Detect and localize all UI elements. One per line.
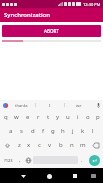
button[interactable]: u: [63, 110, 73, 124]
button[interactable]: Back: [17, 170, 29, 182]
staticText: t: [47, 113, 50, 121]
staticText: n: [70, 141, 74, 149]
staticText: h: [61, 127, 65, 135]
staticText: r: [37, 113, 40, 121]
button[interactable]: ABORT: [2, 25, 101, 37]
staticText: m: [80, 141, 86, 149]
button[interactable]: Home: [43, 170, 55, 182]
button[interactable]: s: [16, 124, 27, 138]
button[interactable]: I: [36, 100, 64, 110]
button[interactable]: k: [78, 124, 88, 138]
button[interactable]: g: [48, 124, 58, 138]
button[interactable]: m: [77, 138, 88, 152]
staticText: v: [48, 141, 52, 149]
button[interactable]: o: [83, 110, 93, 124]
staticText: I: [49, 103, 51, 108]
button[interactable]: .: [78, 152, 86, 168]
button[interactable]: i: [73, 110, 83, 124]
button[interactable]: we: [65, 100, 93, 110]
staticText: y: [56, 113, 60, 121]
button[interactable]: Backspace: [88, 138, 103, 152]
button[interactable]: z: [14, 138, 24, 152]
staticText: u: [66, 113, 70, 121]
button[interactable]: Enter: [89, 155, 100, 166]
staticText: q: [4, 113, 8, 121]
button[interactable]: e: [22, 110, 33, 124]
staticText: o: [86, 113, 90, 121]
staticText: b: [59, 141, 63, 149]
staticText: i: [77, 113, 79, 121]
staticText: j: [72, 127, 74, 135]
button[interactable]: Google: [3, 103, 8, 108]
staticText: ABORT: [44, 28, 59, 34]
button[interactable]: Switch keyboard: [87, 170, 99, 182]
button[interactable]: Recents: [69, 170, 81, 182]
staticText: 12:30 PM: [83, 2, 101, 7]
button[interactable]: a: [5, 124, 16, 138]
button[interactable]: c: [34, 138, 44, 152]
button[interactable]: j: [68, 124, 78, 138]
staticText: x: [27, 141, 31, 149]
button[interactable]: f: [38, 124, 48, 138]
staticText: l: [92, 127, 94, 135]
button[interactable]: h: [58, 124, 68, 138]
staticText: e: [26, 113, 30, 121]
staticText: ?123: [4, 158, 13, 163]
button[interactable]: r: [33, 110, 43, 124]
button[interactable]: v: [44, 138, 55, 152]
staticText: we: [76, 103, 82, 108]
button[interactable]: t: [43, 110, 53, 124]
staticText: c: [38, 141, 41, 149]
staticText: d: [31, 127, 35, 135]
staticText: g: [51, 127, 55, 135]
staticText: p: [96, 113, 100, 121]
button[interactable]: x: [24, 138, 34, 152]
button[interactable]: b: [55, 138, 66, 152]
staticText: ,: [19, 157, 21, 164]
button[interactable]: Change language: [24, 152, 33, 168]
button[interactable]: d: [27, 124, 38, 138]
staticText: z: [18, 141, 21, 149]
staticText: Synchronization: [4, 11, 51, 19]
button[interactable]: n: [66, 138, 77, 152]
button[interactable]: Voice input: [93, 100, 103, 110]
button[interactable]: ?123: [1, 152, 16, 168]
button[interactable]: y: [53, 110, 63, 124]
button[interactable]: l: [88, 124, 98, 138]
staticText: a: [9, 127, 13, 135]
button[interactable]: p: [93, 110, 103, 124]
staticText: s: [20, 127, 23, 135]
staticText: f: [42, 127, 45, 135]
button[interactable]: ,: [16, 152, 24, 168]
staticText: w: [14, 113, 19, 121]
button[interactable]: q: [0, 110, 11, 124]
button[interactable]: w: [11, 110, 22, 124]
staticText: .: [81, 157, 83, 164]
staticText: thanks: [15, 103, 28, 108]
button[interactable]: thanks: [8, 100, 35, 110]
staticText: k: [81, 127, 85, 135]
button[interactable]: Shift: [0, 138, 14, 152]
